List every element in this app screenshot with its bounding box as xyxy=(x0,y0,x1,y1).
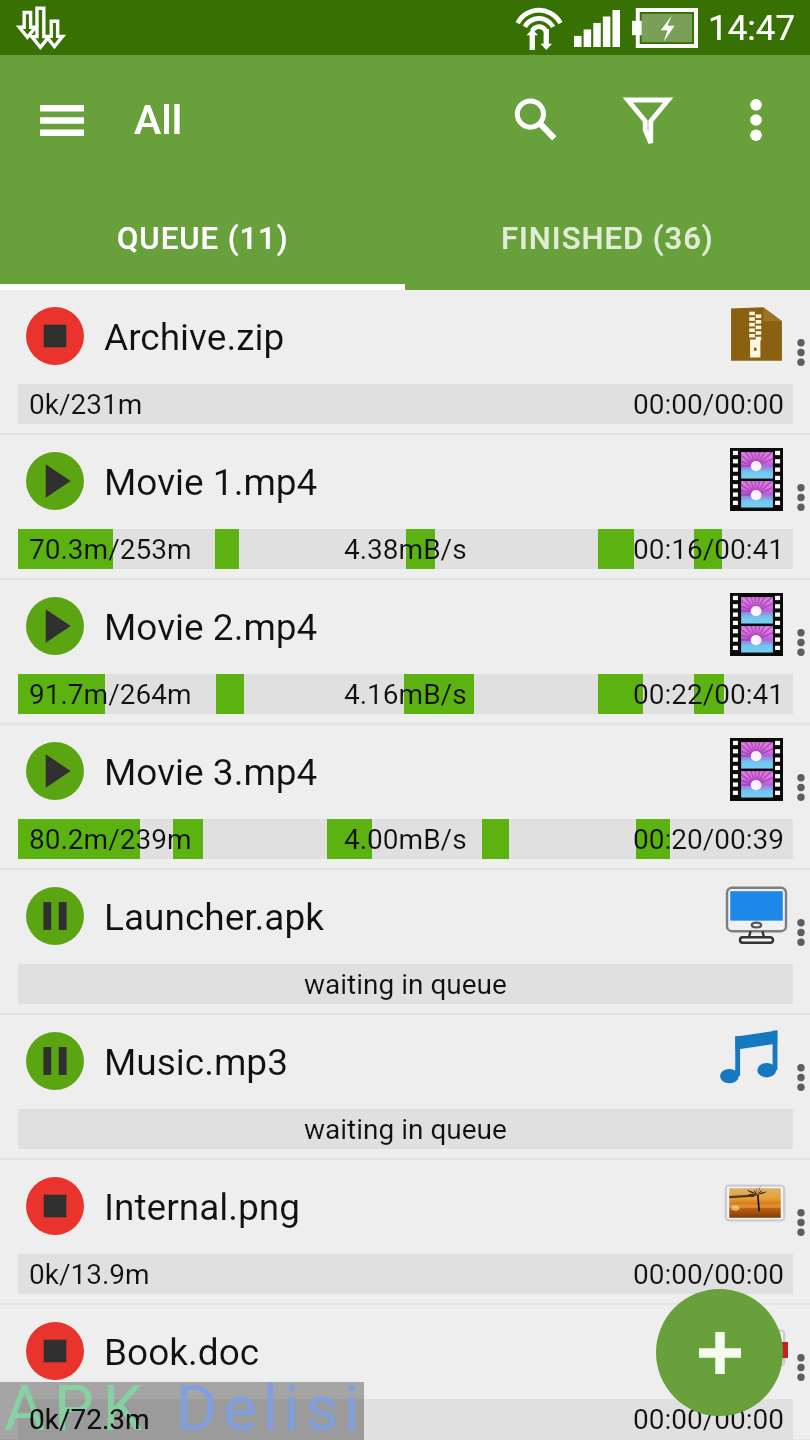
staticText: Archive.zip xyxy=(104,316,285,359)
staticText: Music.mp3 xyxy=(104,1041,288,1084)
staticText: APK xyxy=(4,1372,176,1430)
staticText: All xyxy=(134,96,183,144)
staticText: 4.38mB/s xyxy=(344,533,467,566)
staticText: Movie 3.mp4 xyxy=(104,751,318,794)
staticText: Launcher.apk xyxy=(104,896,324,939)
staticText: 14:47 xyxy=(708,8,796,49)
staticText: waiting in queue xyxy=(304,968,507,1001)
button[interactable]: Archive.zip xyxy=(0,290,810,435)
staticText: 0k/13.9m xyxy=(29,1258,150,1291)
staticText: Movie 1.mp4 xyxy=(104,461,318,504)
button[interactable]: Search xyxy=(500,85,570,155)
button[interactable]: Movie 1.mp4 xyxy=(0,435,810,580)
button[interactable]: Music.mp3 xyxy=(0,1015,810,1160)
button[interactable]: Item menu xyxy=(786,1347,810,1387)
button[interactable]: FINISHED (36) xyxy=(405,185,810,290)
staticText: 00:00/00:00 xyxy=(633,1258,785,1291)
button[interactable]: Item menu xyxy=(786,477,810,517)
staticText: Internal.png xyxy=(104,1186,301,1229)
button[interactable]: Book.doc xyxy=(0,1305,810,1440)
staticText: 00:20/00:39 xyxy=(633,823,785,856)
button[interactable]: Add download xyxy=(656,1289,783,1416)
button[interactable]: Item menu xyxy=(786,332,810,372)
staticText: 0k/72.3m xyxy=(29,1403,150,1436)
button[interactable]: Item menu xyxy=(786,1057,810,1097)
button[interactable]: Item menu xyxy=(786,912,810,952)
staticText: Movie 2.mp4 xyxy=(104,606,318,649)
button[interactable]: Internal.png xyxy=(0,1160,810,1305)
staticText: 00:22/00:41 xyxy=(633,678,785,711)
button[interactable]: Item menu xyxy=(786,1202,810,1242)
staticText: 4.16mB/s xyxy=(344,678,467,711)
staticText: Delisi xyxy=(176,1372,366,1430)
button[interactable]: Item menu xyxy=(786,767,810,807)
staticText: FINISHED (36) xyxy=(501,220,714,256)
staticText: 00:00/00:00 xyxy=(633,1403,785,1436)
button[interactable]: Movie 2.mp4 xyxy=(0,580,810,725)
staticText: 70.3m/253m xyxy=(29,533,192,566)
button[interactable]: Item menu xyxy=(786,622,810,662)
staticText: waiting in queue xyxy=(304,1113,507,1146)
button[interactable]: QUEUE (11) xyxy=(0,185,405,290)
button[interactable]: More options xyxy=(723,87,789,153)
staticText: Book.doc xyxy=(104,1331,260,1374)
button[interactable]: Movie 3.mp4 xyxy=(0,725,810,870)
button[interactable]: Filter xyxy=(613,85,683,155)
staticText: 80.2m/239m xyxy=(29,823,192,856)
staticText: 0k/231m xyxy=(29,388,143,421)
button[interactable]: Launcher.apk xyxy=(0,870,810,1015)
staticText: QUEUE (11) xyxy=(117,220,289,256)
staticText: 4.00mB/s xyxy=(344,823,467,856)
staticText: 00:00/00:00 xyxy=(633,388,785,421)
staticText: 00:16/00:41 xyxy=(633,533,785,566)
button[interactable]: Open navigation menu xyxy=(27,85,97,155)
staticText: 91.7m/264m xyxy=(29,678,192,711)
staticText: 0k/72.3m xyxy=(29,1403,150,1436)
